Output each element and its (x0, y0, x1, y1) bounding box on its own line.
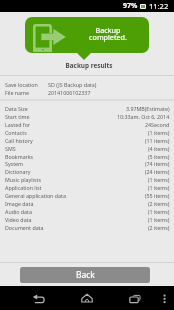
staticText: (11 items) (145, 137, 170, 144)
staticText: General application data (5, 192, 66, 199)
staticText: Document data (5, 224, 44, 231)
staticText: Music playlists (5, 176, 41, 183)
staticText: Image data (5, 200, 34, 207)
button[interactable]: More options (159, 287, 171, 309)
staticText: Backup completed. (73, 25, 143, 42)
staticText: Call history (5, 137, 33, 144)
staticText: (5 items) (148, 153, 170, 160)
staticText: Application list (5, 184, 42, 191)
staticText: Bookmarks (5, 153, 34, 160)
staticText: Back (76, 269, 95, 281)
staticText: Contacts (5, 129, 27, 136)
staticText: Audio data (5, 208, 32, 215)
staticText: (1 items) (148, 216, 170, 223)
staticText: 3.97MB(Estimate) (126, 105, 170, 112)
staticText: Backup results (2, 61, 174, 70)
staticText: Dictionary (5, 168, 31, 175)
staticText: 24Second (145, 121, 170, 128)
staticText: Data Size (5, 105, 28, 112)
staticText: (1 items) (148, 184, 170, 191)
staticText: Video data (5, 216, 32, 223)
button[interactable]: Back (20, 267, 150, 283)
staticText: 10:33am, Oct 6, 2014 (117, 113, 170, 120)
staticText: (4 items) (148, 145, 170, 152)
staticText: (24 items) (145, 168, 170, 175)
button[interactable]: Home (81, 287, 93, 309)
staticText: Lasted for (5, 121, 31, 128)
staticText: (74 items) (145, 160, 170, 167)
staticText: 97% (123, 1, 138, 11)
staticText: (2 items) (148, 224, 170, 231)
staticText: 20141006102337 (48, 89, 91, 96)
staticText: SD (JS Backup data) (48, 81, 97, 88)
staticText: System (5, 160, 23, 167)
staticText: Save location (5, 81, 38, 88)
staticText: (1 items) (148, 208, 170, 215)
staticText: (2 items) (148, 200, 170, 207)
staticText: 11:22 (149, 1, 169, 11)
button[interactable]: Back (33, 287, 45, 309)
staticText: (1 items) (148, 129, 170, 136)
staticText: (1 items) (148, 176, 170, 183)
staticText: Start time (5, 113, 30, 120)
button[interactable]: Recent apps (129, 287, 141, 309)
staticText: File name (5, 89, 30, 96)
staticText: (55 items) (145, 192, 170, 199)
staticText: SMS (5, 145, 16, 152)
